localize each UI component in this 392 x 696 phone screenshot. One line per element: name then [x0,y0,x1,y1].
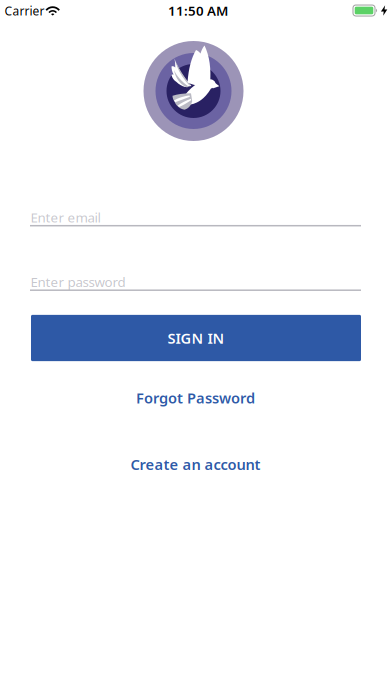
button[interactable]: Create an account [130,455,260,474]
button[interactable]: Enter email [30,203,361,231]
button[interactable]: Forgot Password [136,388,255,408]
staticText: Create an account [130,455,260,474]
staticText: Enter email [30,208,100,226]
staticText: Carrier [4,3,44,19]
staticText: SIGN IN [167,328,224,348]
staticText: Forgot Password [136,388,255,408]
staticText: 11:50 AM [168,2,228,19]
button[interactable]: Enter password [30,267,361,295]
staticText: Enter password [30,273,125,291]
button[interactable]: SIGN IN [31,315,361,361]
